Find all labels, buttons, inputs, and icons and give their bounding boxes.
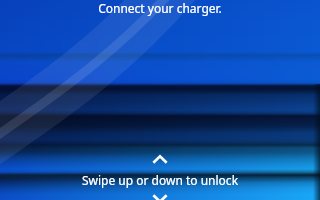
staticText: Connect your charger.: [0, 0, 320, 16]
button[interactable]: Swipe down to unlock: [152, 194, 168, 200]
button[interactable]: Swipe up to unlock: [152, 155, 168, 164]
staticText: Swipe up or down to unlock: [0, 172, 320, 188]
